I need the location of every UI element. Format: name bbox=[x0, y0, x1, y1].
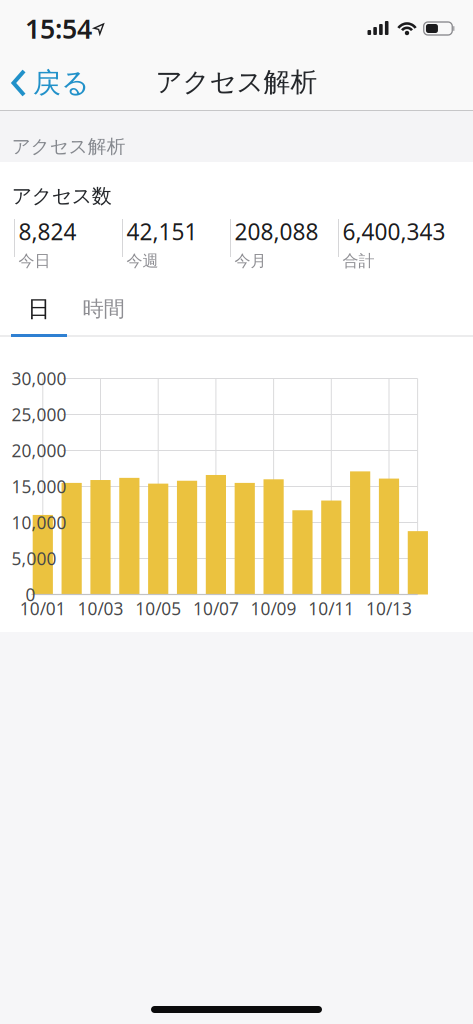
staticText: 0 bbox=[26, 583, 36, 606]
staticText: 10,000 bbox=[12, 511, 67, 534]
button[interactable]: 日 bbox=[11, 289, 67, 329]
staticText: 15,000 bbox=[12, 475, 67, 498]
staticText: 今日 bbox=[18, 251, 50, 271]
staticText: 10/11 bbox=[308, 597, 354, 620]
staticText: 208,088 bbox=[234, 216, 318, 247]
staticText: 15:54 bbox=[25, 11, 92, 46]
staticText: 10/09 bbox=[251, 597, 297, 620]
staticText: 今週 bbox=[126, 251, 158, 271]
button[interactable]: 時間 bbox=[67, 289, 140, 329]
staticText: 今月 bbox=[234, 251, 266, 271]
staticText: 合計 bbox=[342, 251, 374, 271]
staticText: 30,000 bbox=[12, 367, 67, 390]
staticText: 20,000 bbox=[12, 439, 67, 462]
staticText: 10/05 bbox=[135, 597, 181, 620]
staticText: 6,400,343 bbox=[342, 216, 445, 247]
staticText: 10/01 bbox=[20, 597, 66, 620]
staticText: 42,151 bbox=[126, 216, 197, 247]
button[interactable]: 戻る bbox=[12, 56, 90, 110]
staticText: 10/07 bbox=[193, 597, 239, 620]
staticText: アクセス数 bbox=[12, 184, 112, 208]
staticText: 5,000 bbox=[12, 547, 57, 570]
staticText: 10/13 bbox=[366, 597, 412, 620]
staticText: アクセス解析 bbox=[155, 66, 317, 98]
staticText: 時間 bbox=[82, 296, 124, 322]
staticText: 25,000 bbox=[12, 403, 67, 426]
staticText: アクセス解析 bbox=[12, 135, 126, 158]
staticText: 8,824 bbox=[18, 216, 76, 247]
staticText: 日 bbox=[27, 295, 50, 323]
staticText: 戻る bbox=[33, 66, 90, 100]
staticText: 10/03 bbox=[77, 597, 123, 620]
